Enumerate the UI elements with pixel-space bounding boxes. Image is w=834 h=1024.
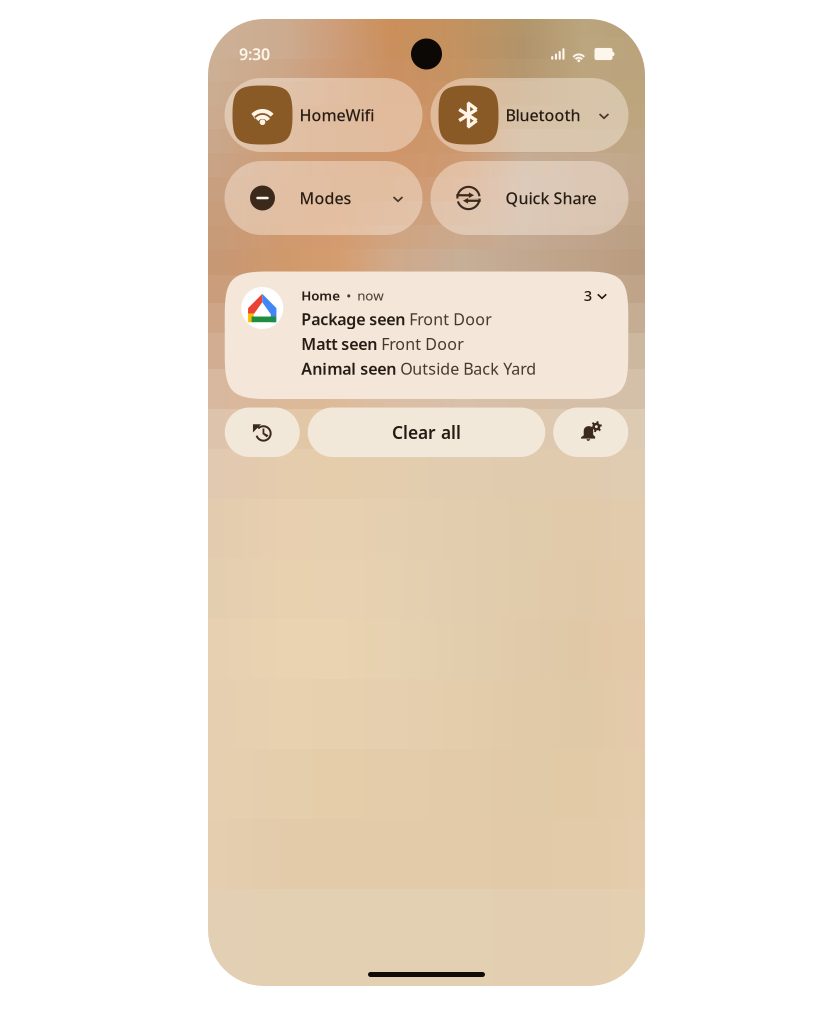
- staticText: • now: [340, 286, 383, 304]
- button[interactable]: Home: [225, 271, 628, 399]
- staticText: Package seen: [301, 308, 405, 330]
- button[interactable]: Notification history: [225, 407, 300, 457]
- staticText: Outside Back Yard: [396, 358, 536, 379]
- staticText: Modes: [299, 187, 351, 209]
- button[interactable]: Notification settings: [553, 407, 628, 457]
- button[interactable]: Bluetooth: [430, 78, 628, 152]
- staticText: Clear all: [392, 421, 461, 444]
- button[interactable]: Clear all: [308, 407, 545, 457]
- staticText: Animal seen: [301, 358, 396, 379]
- staticText: 3: [584, 285, 592, 305]
- staticText: 9:30: [239, 43, 270, 65]
- staticText: HomeWifi: [299, 104, 374, 126]
- button[interactable]: HomeWifi: [224, 78, 422, 152]
- staticText: Home: [301, 286, 340, 304]
- button[interactable]: Modes: [224, 161, 422, 235]
- staticText: Front Door: [405, 308, 492, 330]
- button[interactable]: Quick Share: [430, 161, 628, 235]
- staticText: Front Door: [377, 333, 464, 354]
- staticText: Quick Share: [505, 187, 596, 209]
- staticText: Matt seen: [301, 333, 377, 354]
- staticText: Bluetooth: [505, 104, 580, 126]
